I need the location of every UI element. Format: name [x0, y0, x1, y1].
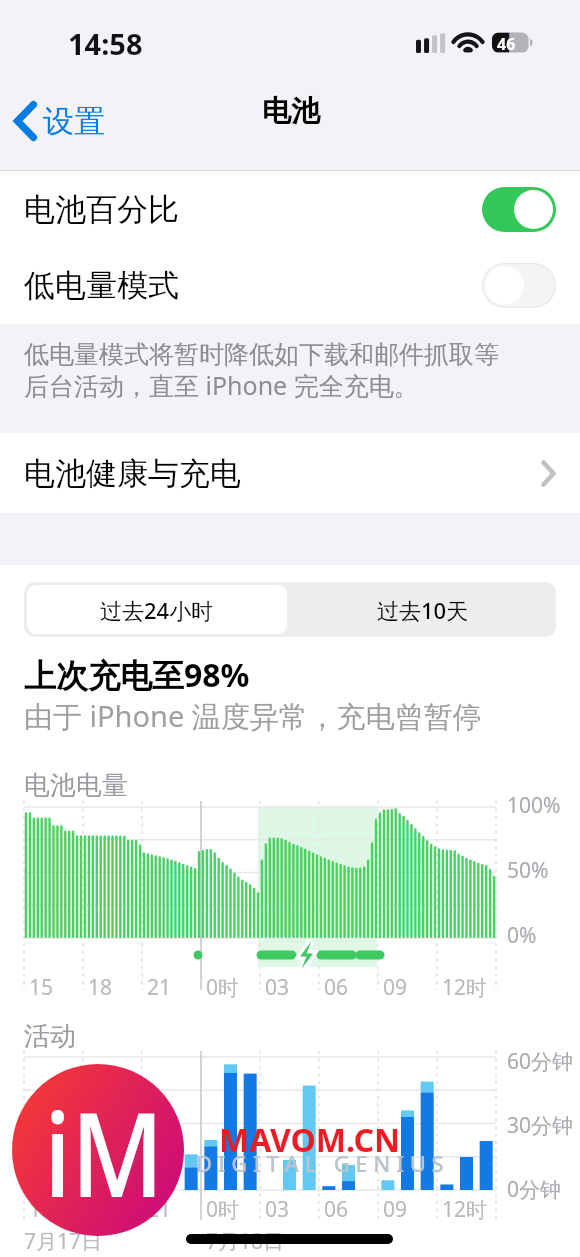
staticText: 09: [383, 973, 408, 1002]
staticText: 上次充电至98%: [24, 653, 250, 697]
staticText: MAVOM.CN: [219, 1118, 400, 1162]
staticText: 电池健康与充电: [24, 454, 241, 493]
button[interactable]: 电池百分比: [0, 171, 580, 247]
button[interactable]: 电池健康与充电: [0, 433, 580, 513]
staticText: 低电量模式: [24, 266, 179, 305]
staticText: 设置: [43, 102, 105, 141]
staticText: D I G I T A L G E N I U S: [196, 1148, 444, 1178]
staticText: 46: [497, 33, 516, 55]
staticText: 过去10天: [377, 595, 469, 625]
staticText: 0分钟: [507, 1175, 562, 1204]
staticText: 21: [147, 1195, 172, 1224]
staticText: 21: [147, 973, 172, 1002]
staticText: 50%: [507, 856, 549, 885]
staticText: 15: [29, 1195, 54, 1224]
staticText: 0时: [206, 973, 240, 1002]
staticText: 100%: [507, 791, 561, 820]
staticText: iM: [44, 1072, 163, 1231]
staticText: 18: [88, 1195, 113, 1224]
staticText: 7月18日: [206, 1227, 285, 1256]
staticText: 12时: [442, 973, 488, 1002]
button[interactable]: 电池百分比: [482, 187, 556, 232]
staticText: 15: [29, 973, 54, 1002]
staticText: 由于 iPhone 温度异常，充电曾暂停: [24, 696, 482, 736]
staticText: 过去24小时: [100, 595, 214, 625]
staticText: 0时: [206, 1195, 240, 1224]
staticText: 7月17日: [24, 1227, 103, 1256]
staticText: 06: [324, 973, 349, 1002]
button[interactable]: 设置: [0, 89, 115, 153]
staticText: 电池: [262, 93, 320, 130]
staticText: 03: [265, 973, 290, 1002]
staticText: 06: [324, 1195, 349, 1224]
staticText: 09: [383, 1195, 408, 1224]
staticText: 60分钟: [507, 1047, 574, 1076]
staticText: 03: [265, 1195, 290, 1224]
staticText: 电池电量: [24, 769, 128, 802]
staticText: 低电量模式将暂时降低如下载和邮件抓取等 后台活动，直至 iPhone 完全充电。: [24, 339, 534, 402]
button[interactable]: 低电量模式: [0, 247, 580, 324]
staticText: 0%: [507, 921, 537, 950]
staticText: 30分钟: [507, 1111, 574, 1140]
button[interactable]: 低电量模式: [482, 263, 556, 308]
button[interactable]: 过去10天: [290, 582, 556, 637]
staticText: 14:58: [68, 24, 143, 63]
staticText: 12时: [442, 1195, 488, 1224]
button[interactable]: 过去24小时: [27, 585, 287, 634]
staticText: 活动: [24, 1020, 76, 1053]
staticText: 18: [88, 973, 113, 1002]
staticText: 电池百分比: [24, 190, 179, 229]
